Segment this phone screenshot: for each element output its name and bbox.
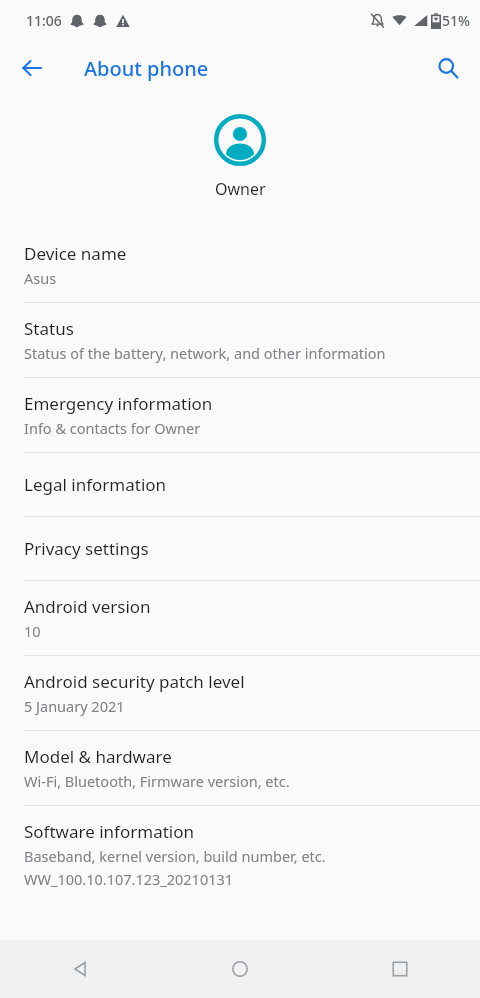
staticText: Wi-Fi, Bluetooth, Firmware version, etc.: [24, 771, 290, 791]
staticText: Status: [24, 317, 74, 340]
staticText: Model & hardware: [24, 745, 172, 768]
staticText: Baseband, kernel version, build number, …: [24, 846, 326, 866]
button[interactable]: Android security patch level: [0, 656, 480, 730]
button[interactable]: Search: [424, 44, 472, 92]
staticText: Privacy settings: [24, 537, 149, 560]
button[interactable]: Status: [0, 303, 480, 377]
staticText: 5 January 2021: [24, 696, 125, 716]
button[interactable]: Model & hardware: [0, 731, 480, 805]
staticText: Software information: [24, 820, 194, 843]
button[interactable]: Device name: [0, 228, 480, 302]
button[interactable]: Android version: [0, 581, 480, 655]
staticText: Android security patch level: [24, 670, 245, 693]
staticText: Device name: [24, 242, 127, 265]
button[interactable]: Back: [8, 44, 56, 92]
staticText: Emergency information: [24, 392, 213, 415]
staticText: WW_100.10.107.123_20210131: [24, 869, 234, 889]
staticText: 11:06: [26, 11, 62, 30]
button[interactable]: Emergency information: [0, 378, 480, 452]
staticText: Owner: [215, 178, 266, 200]
staticText: Asus: [24, 268, 57, 288]
staticText: 10: [24, 621, 41, 641]
button[interactable]: Recent apps: [320, 940, 480, 998]
button[interactable]: Home: [160, 940, 320, 998]
button[interactable]: Back: [0, 940, 160, 998]
staticText: Info & contacts for Owner: [24, 418, 201, 438]
button[interactable]: Software information: [0, 806, 480, 903]
button[interactable]: Privacy settings: [0, 517, 480, 580]
button[interactable]: Legal information: [0, 453, 480, 516]
staticText: Android version: [24, 595, 151, 618]
staticText: Status of the battery, network, and othe…: [24, 343, 386, 363]
staticText: 51%: [442, 11, 470, 30]
staticText: About phone: [84, 55, 209, 82]
staticText: Legal information: [24, 473, 167, 496]
